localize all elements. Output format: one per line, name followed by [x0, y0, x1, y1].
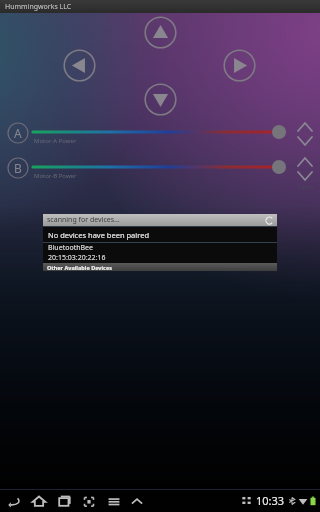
button[interactable]: Left [63, 49, 96, 82]
staticText: Motor-B Power [34, 172, 77, 180]
staticText: Motor-A Power [34, 137, 77, 145]
staticText: scanning for devices... [47, 215, 120, 225]
staticText: 20:15:03:20:22:16 [48, 253, 106, 263]
button[interactable] [33, 155, 293, 179]
button[interactable]: Up [144, 16, 177, 49]
button[interactable]: No devices have been paired [43, 227, 277, 242]
button[interactable]: BluetoothBee [43, 243, 277, 263]
button[interactable]: Increase or decrease A [295, 120, 315, 150]
button[interactable]: A [7, 122, 29, 144]
staticText: No devices have been paired [48, 230, 150, 240]
button[interactable]: Down [144, 83, 177, 116]
button[interactable]: Menu [106, 493, 122, 509]
staticText: Same [298, 183, 314, 191]
button[interactable] [33, 120, 293, 144]
button[interactable]: Home [31, 493, 47, 509]
button[interactable]: Back [6, 493, 22, 509]
button[interactable]: B [7, 157, 29, 179]
staticText: BluetoothBee [48, 243, 93, 253]
staticText: Other Available Devices [47, 264, 112, 271]
staticText: B [14, 160, 22, 176]
button[interactable]: Expand [129, 493, 145, 509]
button[interactable]: Recent apps [56, 493, 72, 509]
staticText: Hummingworks LLC [5, 2, 72, 12]
staticText: A [14, 125, 22, 141]
button[interactable]: Increase or decrease B [295, 155, 315, 185]
button[interactable]: Right [223, 49, 256, 82]
button[interactable]: Screenshot [81, 493, 97, 509]
staticText: 10:33 [256, 493, 285, 508]
